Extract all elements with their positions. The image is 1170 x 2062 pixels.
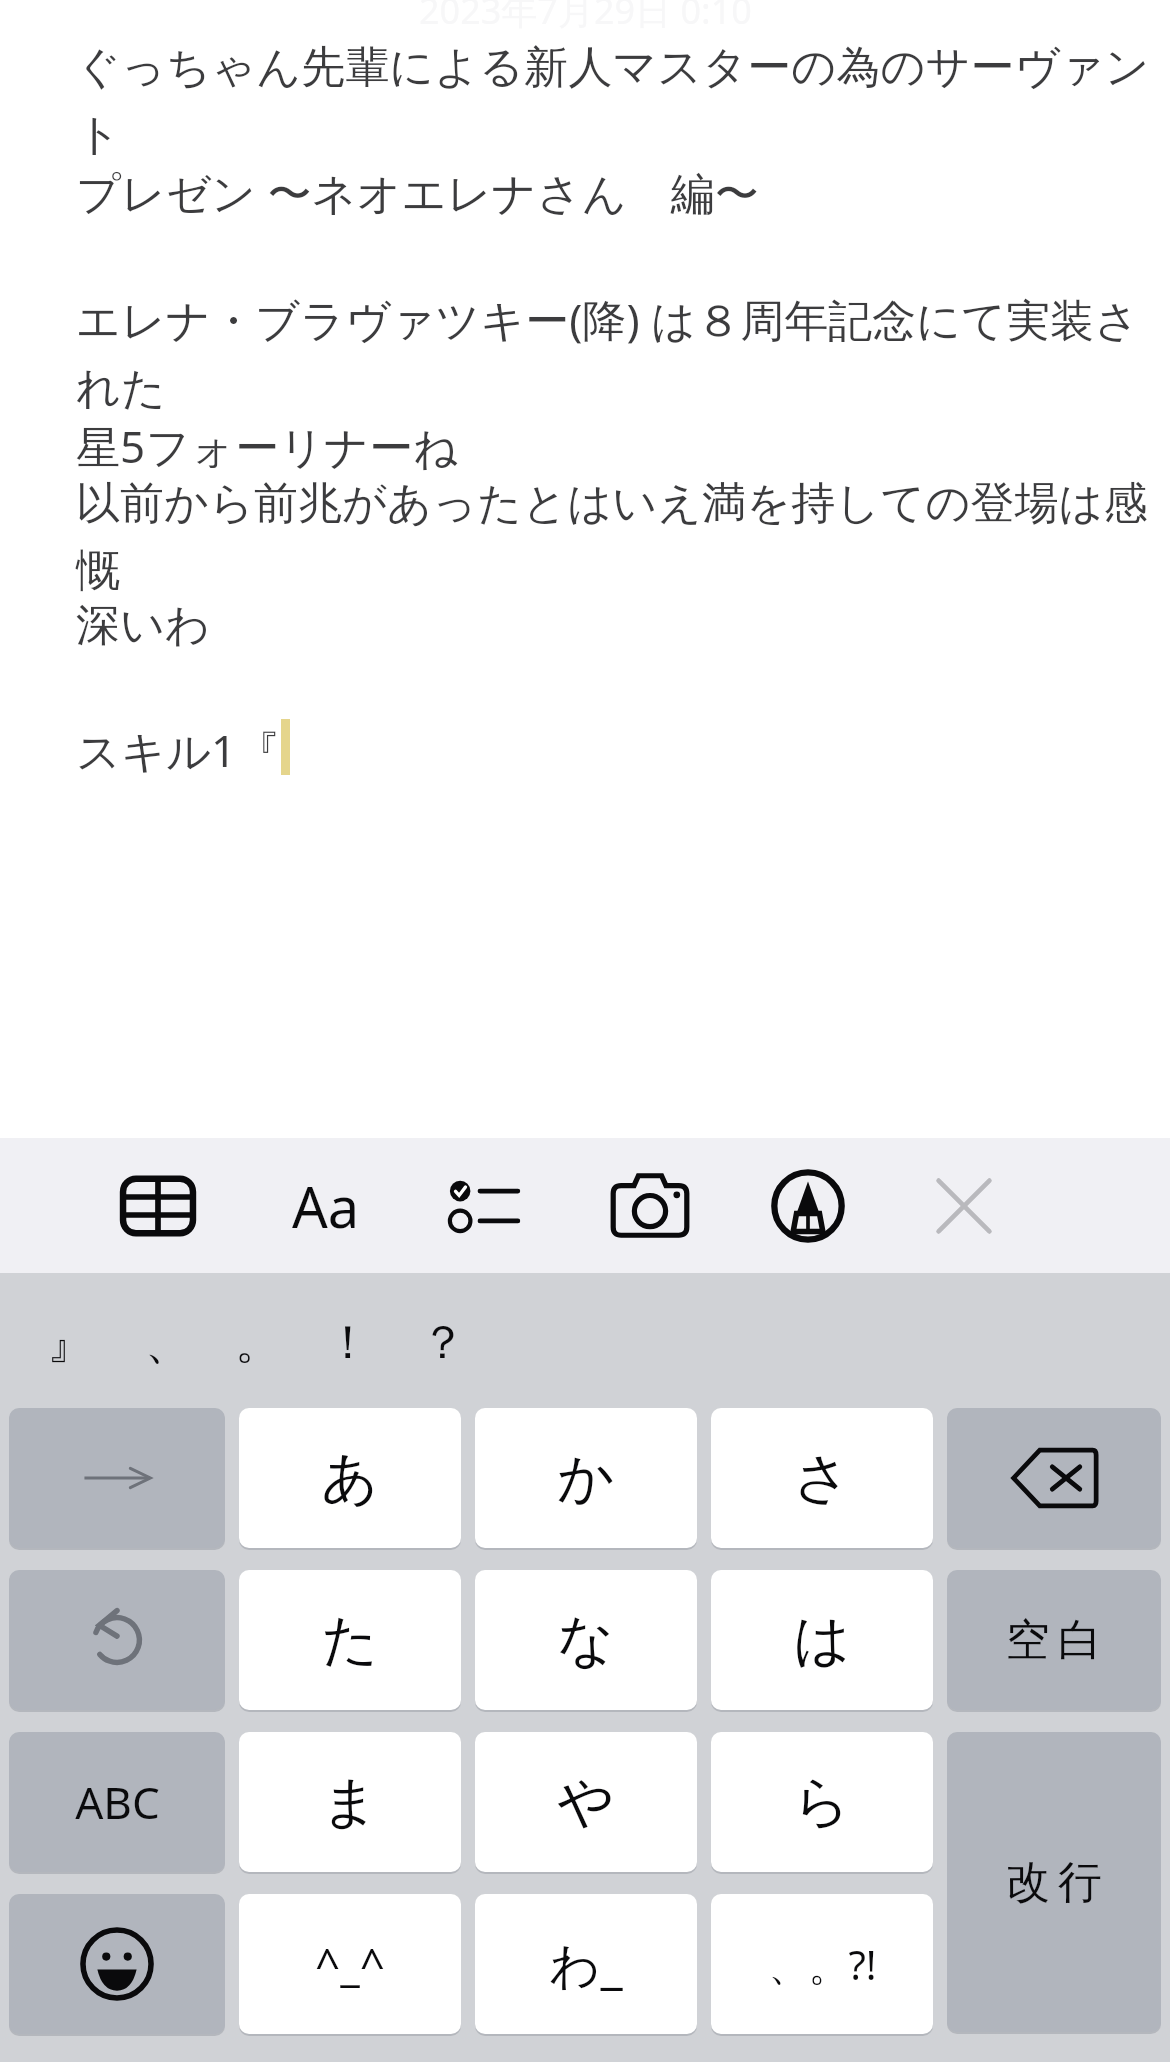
button[interactable]: 、。?! bbox=[711, 1894, 933, 2034]
staticText: ！ bbox=[325, 1314, 371, 1372]
staticText: ぐっちゃん先輩による新人マスターの為のサーヴァント bbox=[76, 40, 1170, 162]
staticText: 改行 bbox=[1002, 1855, 1106, 1910]
button[interactable]: や bbox=[475, 1732, 697, 1872]
button[interactable]: Move cursor right bbox=[9, 1408, 225, 1548]
staticText: 2023年7月29日 0:10 bbox=[419, 0, 752, 35]
button[interactable]: Checklist bbox=[438, 1166, 534, 1246]
staticText: は bbox=[793, 1605, 851, 1676]
button[interactable]: ！ bbox=[300, 1303, 396, 1383]
button[interactable]: ま bbox=[239, 1732, 461, 1872]
staticText: 、 bbox=[145, 1314, 191, 1372]
staticText: 』 bbox=[47, 1314, 93, 1372]
button[interactable]: Aa bbox=[276, 1166, 376, 1246]
staticText: さ bbox=[793, 1443, 851, 1514]
staticText: エレナ・ブラヴァツキー(降) は８周年記念にて実装された bbox=[76, 289, 1170, 416]
staticText: か bbox=[557, 1443, 615, 1514]
staticText: な bbox=[557, 1605, 615, 1676]
button[interactable]: 空白 bbox=[947, 1570, 1161, 1710]
staticText: 深いわ bbox=[76, 598, 211, 653]
button[interactable]: 改行 bbox=[947, 1732, 1161, 2032]
staticText: 以前から前兆があったとはいえ満を持しての登場は感慨 bbox=[76, 476, 1170, 598]
staticText: ら bbox=[793, 1767, 851, 1838]
button[interactable]: Backspace bbox=[947, 1408, 1161, 1548]
button[interactable]: 、 bbox=[120, 1303, 216, 1383]
staticText: スキル1『 bbox=[76, 720, 281, 780]
staticText: ^_^ bbox=[315, 1934, 385, 1994]
button[interactable]: わ_ bbox=[475, 1894, 697, 2034]
staticText: プレゼン 〜ネオエレナさん 編〜 bbox=[76, 162, 759, 222]
staticText: わ_ bbox=[549, 1930, 623, 1998]
button[interactable]: Markup bbox=[760, 1163, 856, 1249]
button[interactable]: ら bbox=[711, 1732, 933, 1872]
button[interactable]: な bbox=[475, 1570, 697, 1710]
button[interactable]: Close bbox=[916, 1166, 1012, 1246]
staticText: ABC bbox=[75, 1772, 160, 1832]
button[interactable]: は bbox=[711, 1570, 933, 1710]
staticText: 空白 bbox=[1002, 1613, 1106, 1668]
button[interactable]: Camera bbox=[602, 1166, 698, 1246]
staticText: 。 bbox=[235, 1314, 281, 1372]
staticText: Aa bbox=[292, 1168, 360, 1244]
button[interactable]: か bbox=[475, 1408, 697, 1548]
button[interactable]: 』 bbox=[22, 1303, 118, 1383]
staticText: あ bbox=[321, 1443, 379, 1514]
button[interactable]: Insert table bbox=[110, 1166, 206, 1246]
button[interactable]: ^_^ bbox=[239, 1894, 461, 2034]
button[interactable]: 。 bbox=[210, 1303, 306, 1383]
staticText: 星5フォーリナーね bbox=[76, 416, 459, 476]
button[interactable]: さ bbox=[711, 1408, 933, 1548]
button[interactable]: た bbox=[239, 1570, 461, 1710]
staticText: ま bbox=[321, 1767, 379, 1838]
button[interactable]: ABC bbox=[9, 1732, 225, 1872]
staticText: ？ bbox=[420, 1314, 466, 1372]
button[interactable]: Undo bbox=[9, 1570, 225, 1710]
button[interactable]: あ bbox=[239, 1408, 461, 1548]
staticText: や bbox=[557, 1767, 615, 1838]
staticText: た bbox=[321, 1605, 379, 1676]
button[interactable]: Emoji bbox=[9, 1894, 225, 2034]
button[interactable]: ？ bbox=[395, 1303, 491, 1383]
staticText: 、。?! bbox=[768, 1937, 877, 1992]
